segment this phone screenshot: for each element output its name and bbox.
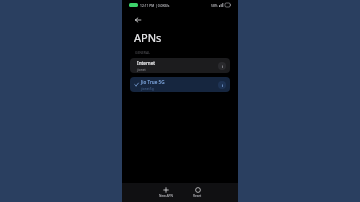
button[interactable]: Edit APN details	[218, 62, 226, 70]
staticText: GENERAL	[135, 50, 151, 55]
staticText: Jio True 5G	[141, 79, 165, 85]
staticText: 12:11 PM | 0.0KB/s	[140, 3, 170, 7]
staticText: 58%	[211, 3, 218, 7]
button[interactable]: Reset	[190, 186, 205, 199]
button[interactable]: New APN	[156, 186, 176, 199]
button[interactable]: Back	[131, 13, 145, 27]
button[interactable]: Jio True 5G	[130, 77, 230, 92]
staticText: Internet	[137, 60, 156, 66]
staticText: APNs	[134, 30, 162, 45]
staticText: New APN	[159, 194, 173, 198]
button[interactable]: Edit APN details	[218, 81, 226, 89]
staticText: Reset	[193, 194, 202, 198]
staticText: jionet5g	[141, 86, 154, 90]
staticText: jionet	[137, 67, 146, 71]
button[interactable]: Internet	[130, 58, 230, 73]
